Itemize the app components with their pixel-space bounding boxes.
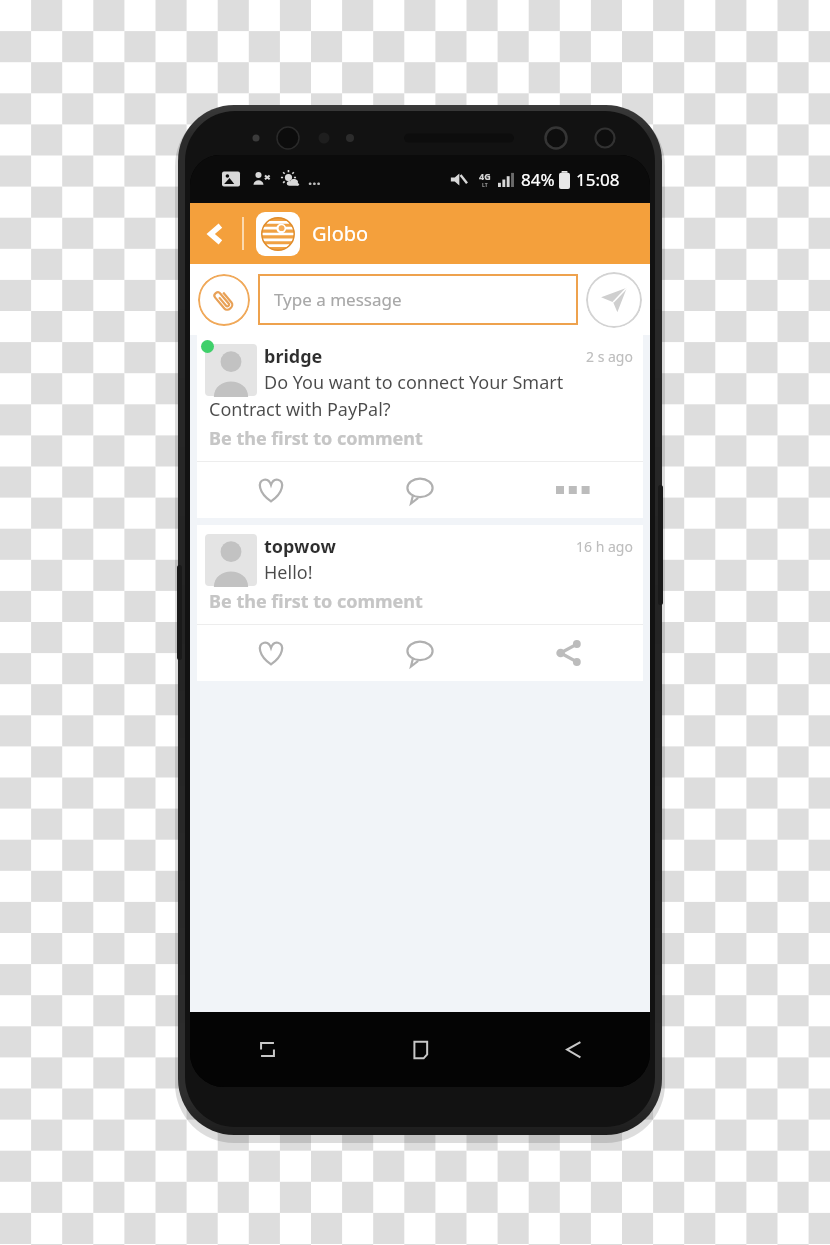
staticText: LT <box>482 182 488 189</box>
button[interactable]: Attach file <box>198 274 250 326</box>
button[interactable]: Type a message <box>258 274 578 325</box>
staticText: ... <box>308 169 321 189</box>
button[interactable]: Like <box>197 462 345 518</box>
button[interactable]: Home <box>344 1012 497 1087</box>
button[interactable]: Back <box>497 1012 650 1087</box>
staticText: 15:08 <box>576 168 620 191</box>
button[interactable]: Back <box>190 203 242 264</box>
staticText: 4G <box>479 170 491 182</box>
staticText: 84% <box>521 168 555 191</box>
button[interactable]: More options <box>494 462 643 518</box>
staticText: topwow <box>264 534 336 559</box>
button[interactable]: Comment <box>345 462 494 518</box>
staticText: 16 h ago <box>576 537 633 556</box>
button[interactable]: Send <box>586 272 642 328</box>
staticText: Do You want to connect Your Smart <box>264 370 564 395</box>
button[interactable]: Recents <box>190 1012 344 1087</box>
staticText: Globo <box>312 220 369 247</box>
staticText: Be the first to comment <box>209 589 423 614</box>
staticText: Contract with PayPal? <box>209 397 391 422</box>
button[interactable]: bridge <box>197 335 643 518</box>
button[interactable]: Share <box>494 625 643 681</box>
staticText: Hello! <box>264 560 313 585</box>
staticText: bridge <box>264 344 323 369</box>
button[interactable]: Comment <box>345 625 494 681</box>
staticText: Be the first to comment <box>209 426 423 451</box>
button[interactable]: Like <box>197 625 345 681</box>
button[interactable]: topwow <box>197 525 643 681</box>
staticText: Type a message <box>274 288 402 311</box>
staticText: 2 s ago <box>586 347 633 366</box>
